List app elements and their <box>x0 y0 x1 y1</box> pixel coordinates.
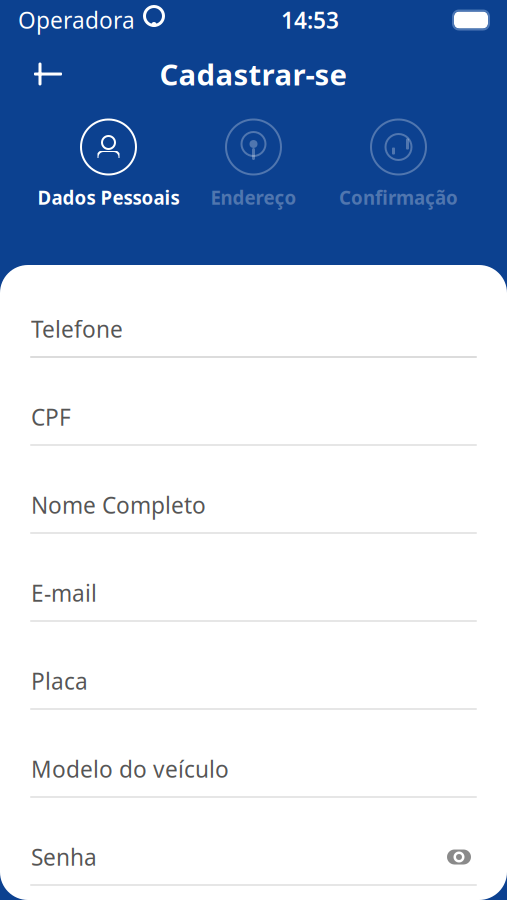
staticText: CPF <box>31 402 71 432</box>
button[interactable]: Mostrar senha <box>442 842 476 872</box>
button[interactable]: Voltar <box>25 52 71 96</box>
staticText: 14:53 <box>281 5 339 35</box>
staticText: Confirmação <box>339 185 458 210</box>
staticText: Nome Completo <box>31 490 206 520</box>
button[interactable]: Endereço <box>181 118 326 210</box>
staticText: Placa <box>31 666 88 696</box>
staticText: E-mail <box>31 578 97 608</box>
staticText: Modelo do veículo <box>31 754 229 784</box>
staticText: Senha <box>31 842 97 872</box>
button[interactable]: Confirmação <box>326 118 471 210</box>
staticText: Cadastrar-se <box>159 54 347 93</box>
staticText: Endereço <box>210 185 296 210</box>
staticText: Dados Pessoais <box>37 185 179 210</box>
button[interactable]: Dados Pessoais <box>36 118 181 210</box>
staticText: Operadora <box>18 5 135 35</box>
staticText: Telefone <box>31 314 123 344</box>
